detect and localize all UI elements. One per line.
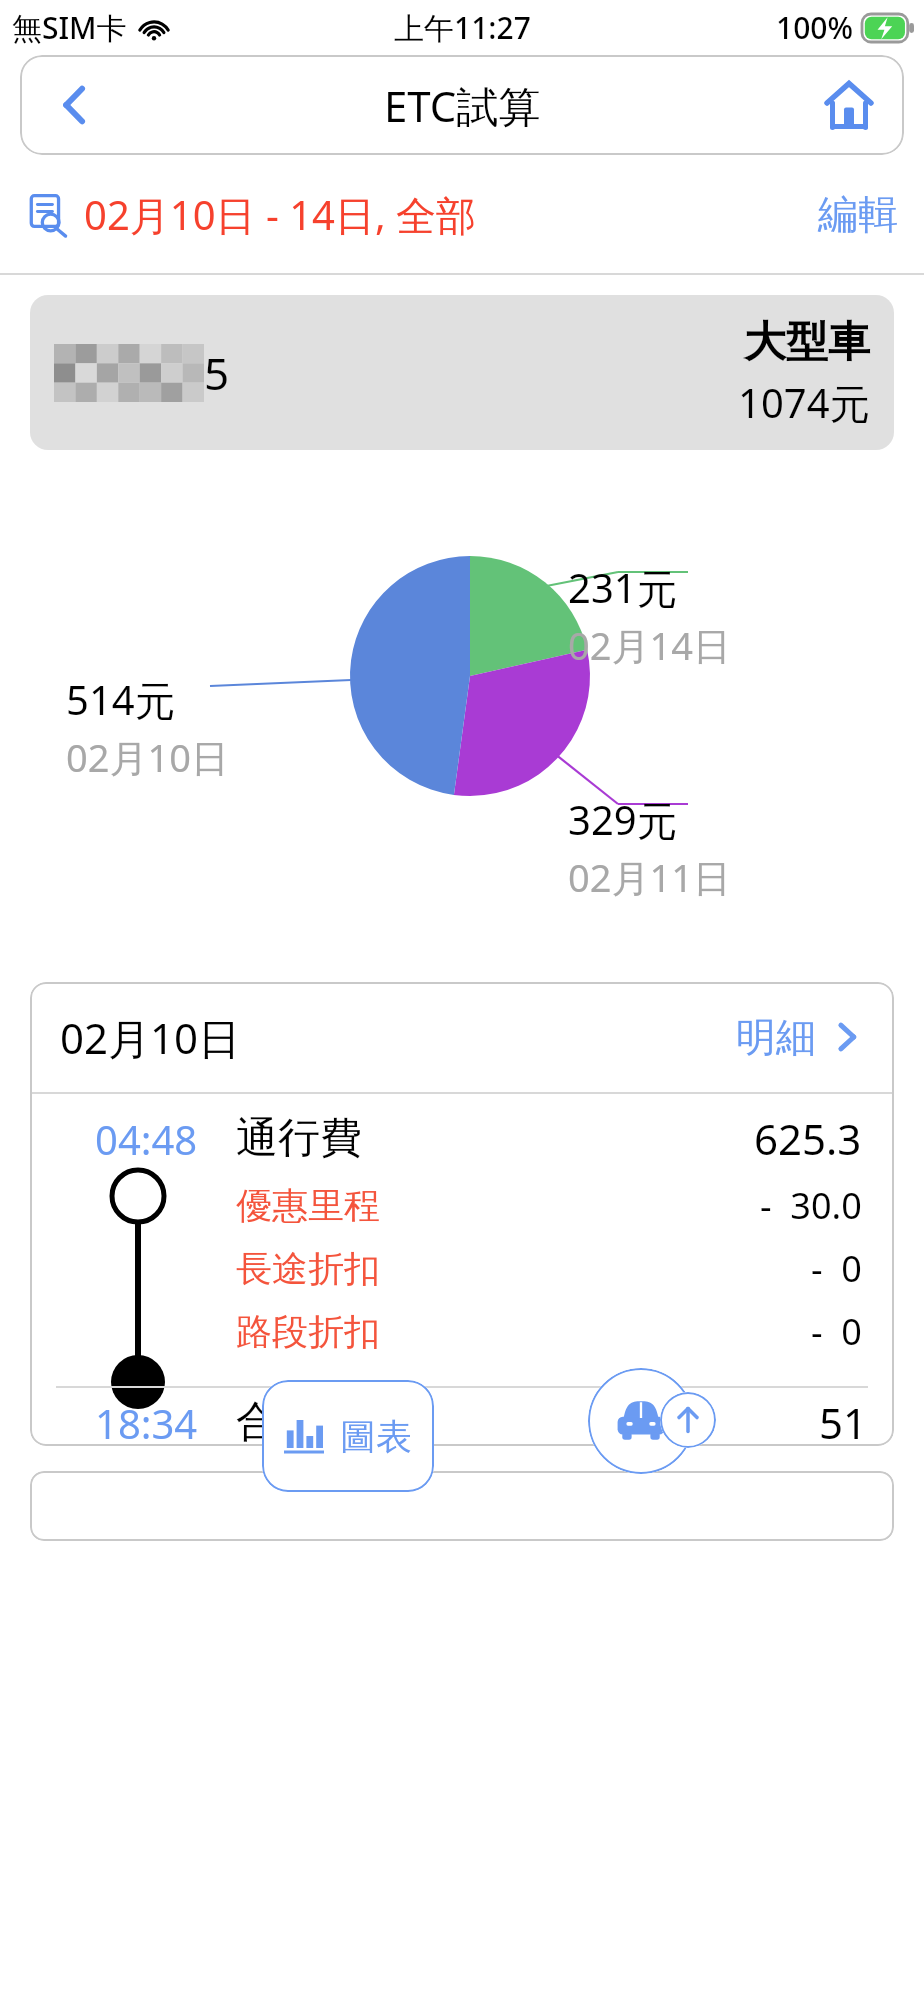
- staticText: 大型車: [744, 316, 870, 369]
- staticText: - 30.0: [760, 1181, 862, 1230]
- staticText: 02月11日: [568, 851, 731, 903]
- staticText: 02月14日: [568, 619, 731, 671]
- button[interactable]: 圖表: [262, 1380, 434, 1492]
- staticText: 51: [819, 1394, 868, 1446]
- staticText: - 0: [811, 1307, 862, 1356]
- staticText: 編輯: [818, 189, 898, 239]
- staticText: 231元: [568, 560, 677, 615]
- staticText: 100%: [776, 7, 854, 48]
- button[interactable]: 5: [30, 295, 894, 450]
- staticText: 02月10日: [66, 731, 229, 783]
- staticText: 5: [204, 343, 230, 403]
- staticText: 625.3: [754, 1110, 862, 1167]
- button[interactable]: 編輯: [818, 189, 898, 239]
- staticText: 合計: [236, 1396, 320, 1446]
- staticText: 329元: [568, 792, 677, 847]
- staticText: 1074元: [738, 375, 870, 430]
- staticText: 02月10日 - 14日, 全部: [84, 187, 477, 242]
- staticText: 圖表: [340, 1414, 412, 1459]
- button[interactable]: Back: [20, 55, 130, 155]
- staticText: 02月10日: [60, 1009, 241, 1066]
- staticText: 明細: [736, 1012, 816, 1062]
- staticText: - 0: [811, 1244, 862, 1293]
- staticText: ETC試算: [384, 77, 541, 134]
- staticText: 優惠里程: [236, 1183, 380, 1228]
- button[interactable]: Home: [794, 55, 904, 155]
- staticText: 上午11:27: [394, 7, 531, 48]
- staticText: 04:48: [95, 1112, 198, 1166]
- button[interactable]: 02月10日: [30, 982, 894, 1092]
- staticText: 無SIM卡: [12, 7, 127, 48]
- button[interactable]: 02月10日 - 14日, 全部: [26, 187, 818, 242]
- button[interactable]: Scroll to top: [660, 1392, 716, 1448]
- staticText: 514元: [66, 672, 175, 727]
- staticText: 通行費: [236, 1112, 362, 1165]
- staticText: 18:34: [95, 1396, 198, 1446]
- staticText: 長途折扣: [236, 1246, 380, 1291]
- staticText: 路段折扣: [236, 1309, 380, 1354]
- button[interactable]: Vehicle: [588, 1368, 694, 1474]
